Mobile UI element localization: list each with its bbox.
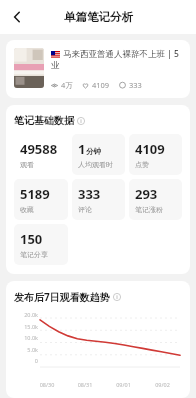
button[interactable]: Back	[5, 5, 29, 29]
staticText: 20.0k	[14, 311, 38, 318]
staticText: 收藏	[20, 205, 34, 214]
staticText: 观看	[20, 160, 34, 169]
button[interactable]: 1	[72, 134, 125, 175]
staticText: 333	[78, 185, 101, 203]
staticText: 人均观看时长	[78, 160, 119, 169]
staticText: 单篇笔记分析	[64, 10, 133, 24]
button[interactable]: 马来西亚普通人裸辞不上班 | 5大副	[6, 40, 190, 98]
staticText: 笔记涨粉	[135, 205, 163, 214]
staticText: 08/31	[66, 381, 104, 388]
staticText: 49588	[20, 140, 58, 158]
staticText: 分钟	[86, 147, 101, 156]
staticText: 293	[135, 185, 158, 203]
button[interactable]: 293	[129, 179, 182, 220]
staticText: 15.0k	[14, 323, 38, 330]
staticText: 4万	[61, 80, 73, 90]
staticText: 评论	[78, 205, 92, 214]
button[interactable]: 5189	[14, 179, 68, 220]
staticText: 10.0k	[14, 334, 38, 341]
staticText: 发布后7日观看数趋势	[14, 290, 110, 304]
staticText: 09/02	[143, 381, 182, 388]
staticText: 点赞	[135, 160, 149, 169]
staticText: 09/01	[104, 381, 143, 388]
button[interactable]: 150	[14, 224, 68, 265]
button[interactable]: 49588	[14, 134, 68, 175]
staticText: 5.0k	[14, 346, 38, 353]
staticText: 马来西亚普通人裸辞不上班 | 5大副	[63, 48, 182, 60]
staticText: 1	[78, 140, 86, 158]
staticText: 5189	[20, 185, 50, 203]
staticText: 150	[20, 230, 43, 248]
staticText: 4109	[92, 80, 110, 90]
staticText: 笔记基础数据	[14, 114, 74, 127]
button[interactable]: 4109	[129, 134, 182, 175]
staticText: 业	[51, 60, 60, 71]
staticText: 333	[129, 80, 142, 90]
staticText: 0	[14, 357, 38, 364]
staticText: 笔记分享	[20, 250, 48, 259]
staticText: 08/30	[28, 381, 66, 388]
button[interactable]: 333	[72, 179, 125, 220]
staticText: 4109	[135, 140, 165, 158]
